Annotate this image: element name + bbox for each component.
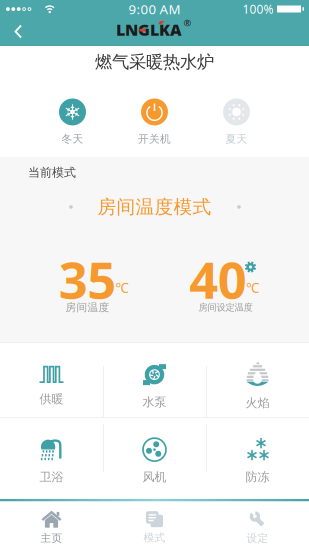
staticText: 100% — [242, 1, 273, 17]
button[interactable]: 风机 — [103, 430, 206, 492]
button[interactable]: 设定 — [206, 509, 309, 543]
staticText: 火焰 — [245, 396, 269, 410]
staticText: ® — [183, 17, 191, 29]
button[interactable]: 夏天 — [208, 98, 264, 145]
staticText: 设定 — [246, 532, 268, 545]
staticText: 房间设定温度 — [198, 302, 252, 313]
staticText: 风机 — [142, 470, 166, 484]
staticText: 燃气采暖热水炉 — [95, 51, 214, 73]
button[interactable]: Back — [0, 18, 36, 46]
staticText: 40 — [189, 245, 247, 313]
button[interactable]: 防冻 — [206, 430, 309, 492]
staticText: 模式 — [143, 531, 165, 544]
button[interactable]: 卫浴 — [0, 430, 103, 492]
staticText: 9:00 AM — [128, 0, 180, 18]
staticText: 开关机 — [138, 132, 171, 145]
button[interactable]: 冬天 — [44, 98, 100, 145]
staticText: 35 — [59, 245, 116, 313]
staticText: LNGLKA — [116, 19, 182, 40]
button[interactable]: 供暖 — [0, 355, 103, 417]
staticText: 房间温度 — [65, 301, 109, 314]
button[interactable]: 开关机 — [126, 98, 182, 145]
staticText: 水泵 — [142, 395, 166, 409]
staticText: 房间温度模式 — [97, 195, 211, 218]
staticText: 防冻 — [245, 470, 269, 484]
button[interactable]: 主页 — [0, 509, 103, 543]
button[interactable]: 模式 — [103, 509, 206, 542]
staticText: ℃ — [115, 279, 128, 296]
staticText: 当前模式 — [28, 165, 76, 180]
staticText: 冬天 — [61, 132, 83, 145]
staticText: 供暖 — [39, 392, 63, 406]
staticText: 主页 — [40, 532, 62, 545]
staticText: ℃ — [246, 279, 259, 296]
button[interactable]: 水泵 — [103, 355, 206, 417]
staticText: 卫浴 — [39, 470, 63, 484]
staticText: 夏天 — [225, 132, 247, 145]
button[interactable]: 火焰 — [206, 355, 309, 417]
